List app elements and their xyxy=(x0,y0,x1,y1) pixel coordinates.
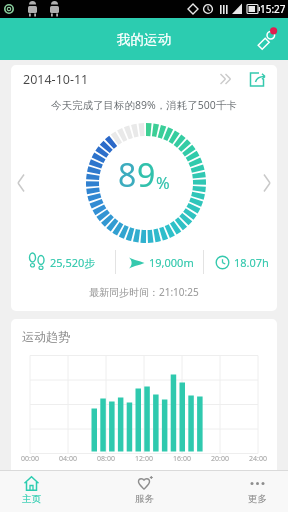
staticText: 18.07h xyxy=(234,255,269,270)
staticText: 16:00 xyxy=(173,454,191,464)
staticText: 我的运动 xyxy=(117,31,171,48)
staticText: 2014-10-11 xyxy=(23,71,89,88)
staticText: 20:00 xyxy=(211,454,229,464)
staticText: % xyxy=(156,171,170,193)
button[interactable]: 服务 xyxy=(127,475,161,505)
button[interactable] xyxy=(11,344,277,454)
staticText: 25,520步 xyxy=(50,255,96,270)
staticText: 服务 xyxy=(135,493,154,505)
staticText: 00:00 xyxy=(21,454,39,464)
button[interactable]: 18.07h xyxy=(215,255,277,270)
staticText: 08:00 xyxy=(97,454,115,464)
staticText: 24:00 xyxy=(249,454,267,464)
button[interactable]: 25,520步 xyxy=(29,253,115,271)
staticText: 9 xyxy=(137,153,156,197)
staticText: 运动趋势 xyxy=(22,329,70,344)
staticText: 更多 xyxy=(248,493,267,505)
button[interactable]: 主页 xyxy=(14,475,48,505)
button[interactable]: 2014-10-11 xyxy=(23,68,268,90)
staticText: 8 xyxy=(118,153,137,197)
staticText: 今天完成了目标的89%，消耗了500千卡 xyxy=(51,98,237,112)
staticText: 15:27 xyxy=(260,2,286,16)
button[interactable] xyxy=(248,69,268,89)
staticText: 19,000m xyxy=(149,255,194,270)
staticText: 04:00 xyxy=(59,454,77,464)
staticText: 主页 xyxy=(22,493,41,505)
staticText: 12:00 xyxy=(135,454,153,464)
staticText: 最新同步时间：21:10:25 xyxy=(89,285,199,299)
button[interactable]: 更多 xyxy=(240,475,274,505)
button[interactable] xyxy=(256,27,280,51)
button[interactable]: 19,000m xyxy=(128,255,203,270)
